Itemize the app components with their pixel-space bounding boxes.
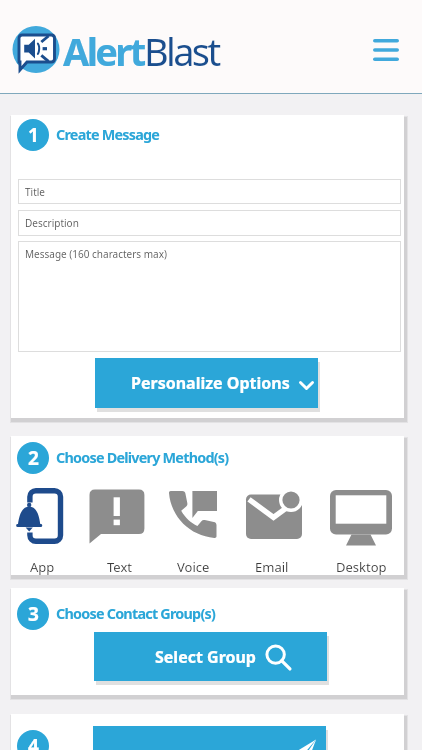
staticText: App <box>30 558 55 576</box>
staticText: Message (160 characters max) <box>25 247 167 261</box>
staticText: 3 <box>28 601 39 627</box>
staticText: 1 <box>28 122 39 148</box>
staticText: Desktop <box>336 558 387 576</box>
staticText: Text <box>107 558 132 576</box>
staticText: Choose Contact Group(s) <box>56 604 216 624</box>
button[interactable]: Send <box>93 726 326 750</box>
button[interactable]: Description <box>18 210 401 236</box>
button[interactable]: Voice <box>154 474 232 574</box>
button[interactable]: Select Group <box>94 632 327 681</box>
button[interactable]: Personalize Options <box>95 358 318 408</box>
staticText: Create Message <box>56 125 160 145</box>
staticText: Alert <box>63 25 144 77</box>
button[interactable]: Email <box>233 474 311 574</box>
staticText: Description <box>25 216 79 230</box>
staticText: Email <box>255 558 289 576</box>
staticText: 4 <box>28 733 39 750</box>
staticText: Voice <box>177 558 210 576</box>
button[interactable]: Message (160 characters max) <box>18 241 401 352</box>
staticText: Choose Delivery Method(s) <box>56 448 229 468</box>
staticText: Personalize Options <box>131 372 290 394</box>
button[interactable]: Text <box>80 474 158 574</box>
staticText: Blast <box>144 25 219 77</box>
staticText: 2 <box>28 445 39 471</box>
staticText: Select Group <box>155 646 256 668</box>
button[interactable]: Title <box>18 179 401 204</box>
staticText: Title <box>25 185 45 199</box>
button[interactable]: Desktop <box>322 474 400 574</box>
button[interactable]: Menu <box>365 31 407 69</box>
button[interactable]: App <box>3 474 81 574</box>
